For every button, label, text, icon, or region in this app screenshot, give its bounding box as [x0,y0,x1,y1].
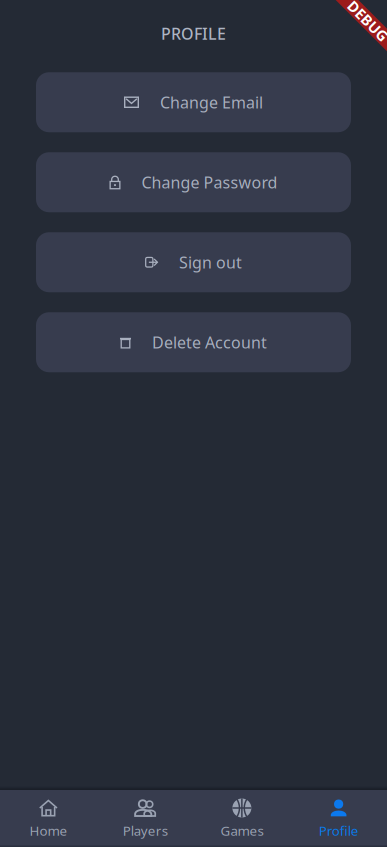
staticText: DEBUG [342,11,387,31]
staticText: Delete Account [152,332,267,353]
staticText: PROFILE [161,23,226,44]
staticText: Change Password [141,172,277,193]
button[interactable]: Change Email [36,72,351,132]
button[interactable]: Players [97,790,194,847]
staticText: Games [220,822,263,839]
button[interactable]: Delete Account [36,312,351,372]
staticText: Change Email [160,92,263,113]
button[interactable]: Home [0,790,97,847]
staticText: Home [29,822,67,839]
button[interactable]: Sign out [36,232,351,292]
button[interactable]: Change Password [36,152,351,212]
button[interactable]: Profile [290,790,387,847]
staticText: Profile [319,822,359,839]
staticText: Sign out [179,252,242,273]
button[interactable]: Games [193,790,290,847]
staticText: Players [123,822,168,839]
